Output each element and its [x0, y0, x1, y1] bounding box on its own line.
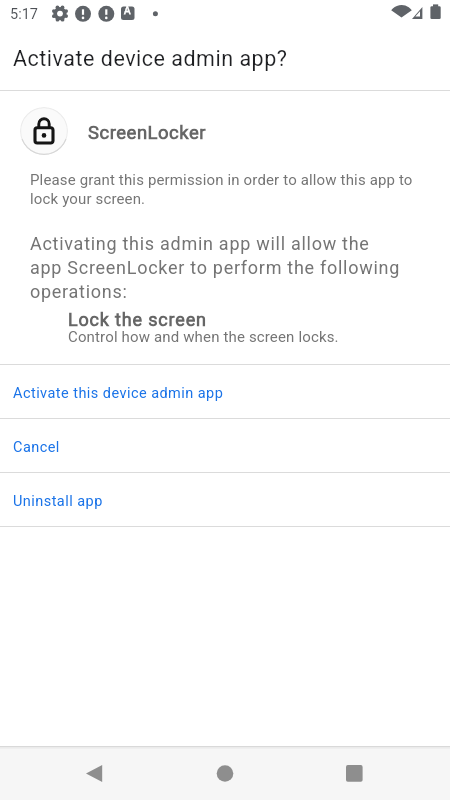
- staticText: Activate this device admin app: [13, 385, 224, 402]
- button[interactable]: Uninstall app: [0, 473, 450, 526]
- button[interactable]: [150, 746, 300, 800]
- staticText: A: [124, 5, 131, 17]
- button[interactable]: [300, 746, 450, 800]
- button[interactable]: Cancel: [0, 419, 450, 472]
- staticText: Activating this admin app will allow the…: [30, 233, 401, 302]
- button[interactable]: [0, 746, 150, 800]
- staticText: Cancel: [13, 439, 60, 456]
- staticText: ScreenLocker: [88, 122, 207, 144]
- staticText: Please grant this permission in order to…: [30, 171, 413, 208]
- button[interactable]: Activate this device admin app: [0, 365, 450, 418]
- staticText: Activate device admin app?: [13, 46, 288, 71]
- staticText: 5:17: [10, 6, 38, 23]
- staticText: Control how and when the screen locks.: [68, 328, 339, 346]
- staticText: Uninstall app: [13, 493, 103, 510]
- staticText: Lock the screen: [68, 309, 207, 330]
